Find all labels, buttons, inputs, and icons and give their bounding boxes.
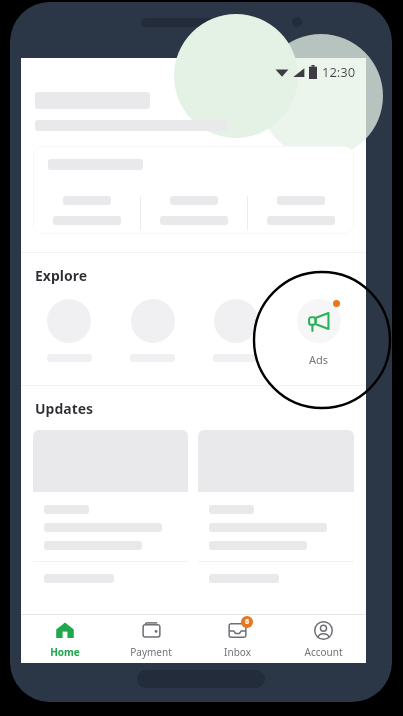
button[interactable] — [27, 299, 111, 362]
button[interactable] — [194, 299, 277, 362]
staticText: Home — [50, 645, 80, 659]
button[interactable] — [198, 430, 354, 590]
staticText: 12:30 — [322, 63, 356, 81]
button[interactable]: Account — [280, 615, 366, 663]
button[interactable] — [33, 430, 188, 590]
button[interactable]: Payment — [108, 615, 194, 663]
staticText: Ads — [309, 352, 329, 367]
button[interactable]: Ads — [277, 299, 360, 367]
staticText: 6 — [245, 617, 250, 627]
staticText: Payment — [130, 645, 172, 659]
button[interactable] — [33, 146, 354, 234]
button[interactable] — [111, 299, 194, 362]
staticText: Explore — [35, 266, 88, 285]
button[interactable]: Home — [21, 615, 108, 663]
staticText: Inbox — [224, 645, 251, 659]
button[interactable]: 6 — [194, 615, 280, 663]
staticText: Updates — [35, 399, 94, 418]
staticText: Account — [304, 645, 343, 659]
